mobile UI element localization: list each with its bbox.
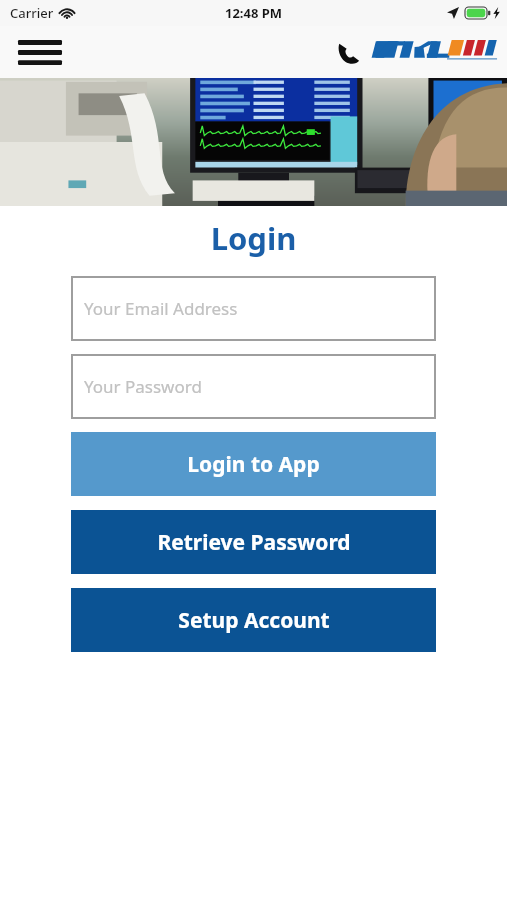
button[interactable]: Login to App <box>71 432 436 496</box>
staticText: Your Password <box>84 375 202 398</box>
staticText: Login to App <box>187 450 320 479</box>
button[interactable]: Call <box>331 35 365 69</box>
button[interactable]: Retrieve Password <box>71 510 436 574</box>
staticText: Setup Account <box>178 606 330 635</box>
staticText: Login <box>0 217 507 259</box>
button[interactable]: Your Password <box>71 354 436 419</box>
staticText: 12:48 PM <box>225 4 283 22</box>
staticText: Carrier <box>10 4 54 22</box>
staticText: Retrieve Password <box>157 528 351 557</box>
staticText: Your Email Address <box>84 297 238 320</box>
button[interactable]: Setup Account <box>71 588 436 652</box>
button[interactable]: Your Email Address <box>71 276 436 341</box>
button[interactable]: TKL Research <box>369 34 499 70</box>
button[interactable]: Menu <box>16 35 64 69</box>
